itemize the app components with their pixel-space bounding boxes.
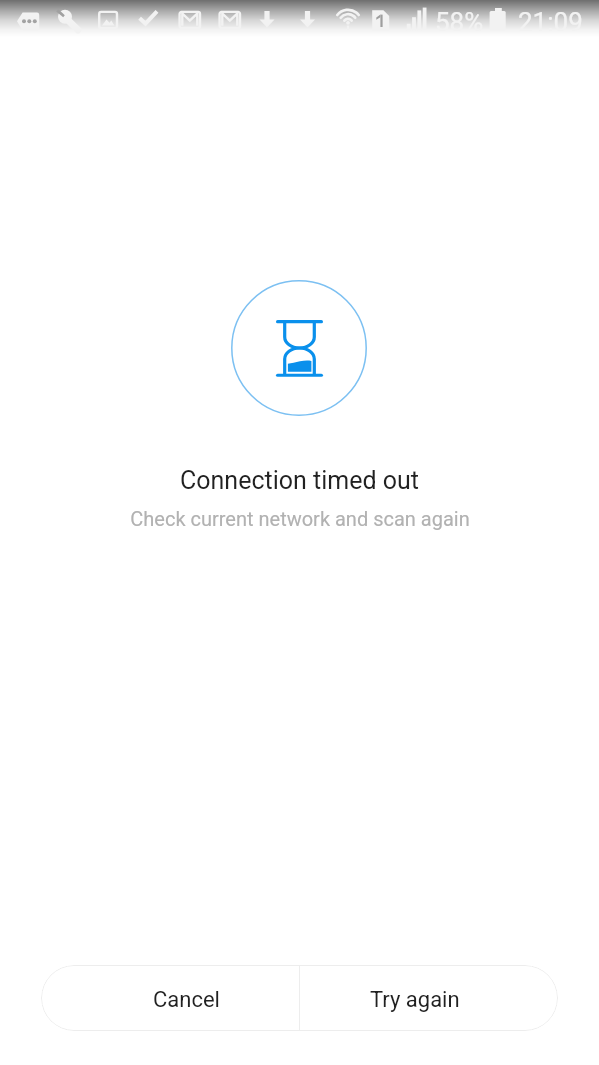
staticText: Try again — [370, 987, 460, 1013]
staticText: 21:09 — [518, 7, 583, 37]
staticText: 58% — [435, 7, 484, 37]
button[interactable]: Cancel — [41, 965, 299, 1031]
staticText: Cancel — [153, 987, 220, 1013]
staticText: Connection timed out — [180, 466, 419, 495]
staticText: Check current network and scan again — [130, 507, 470, 530]
button[interactable]: Try again — [300, 965, 558, 1031]
